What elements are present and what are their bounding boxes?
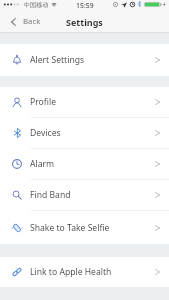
staticText: Alert Settings (30, 54, 85, 66)
button[interactable]: Shake to Take Selfie (0, 211, 169, 244)
button[interactable]: Profile (0, 87, 169, 117)
staticText: Find Band (30, 189, 71, 201)
staticText: 中国移动 (24, 1, 49, 9)
button[interactable]: Find Band (0, 180, 169, 210)
button[interactable]: Alarm (0, 149, 169, 179)
button[interactable]: Link to Apple Health (0, 257, 169, 287)
staticText: Link to Apple Health (30, 266, 112, 278)
staticText: Shake to Take Selfie (30, 222, 110, 234)
button[interactable]: Devices (0, 118, 169, 148)
staticText: Profile (30, 96, 57, 108)
button[interactable]: Alert Settings (0, 44, 169, 76)
button[interactable]: Back (11, 16, 41, 27)
staticText: Settings (66, 16, 103, 28)
staticText: Alarm (30, 158, 55, 170)
staticText: Back (23, 16, 41, 27)
staticText: 15:59 (76, 1, 94, 10)
staticText: Devices (30, 127, 61, 139)
